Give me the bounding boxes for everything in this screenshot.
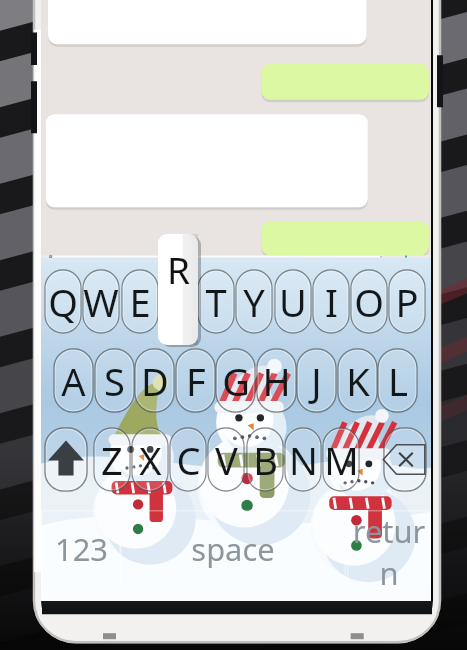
staticText: space [191,528,275,570]
button[interactable]: Z [94,428,130,491]
staticText: return [347,510,431,587]
button[interactable]: C [170,428,206,491]
staticText: E [129,276,151,328]
button[interactable]: 123 [41,510,121,587]
staticText: K [346,355,370,407]
staticText: I [325,276,338,328]
staticText: D [141,355,169,407]
button[interactable]: V [208,428,244,491]
button[interactable]: Shift [45,428,87,491]
staticText: S [104,355,125,407]
button[interactable]: W [83,270,119,333]
button[interactable]: space [120,510,346,587]
staticText: A [61,355,86,407]
button[interactable]: U [275,270,311,333]
staticText: H [262,355,291,407]
button[interactable]: Delete [384,428,426,491]
button[interactable]: O [351,270,387,333]
staticText: F [186,355,206,407]
staticText: Y [243,276,265,328]
button[interactable]: X [132,428,168,491]
button[interactable]: J [297,349,336,412]
staticText: B [253,434,278,486]
button[interactable]: G [216,349,255,412]
staticText: C [176,434,201,486]
staticText: W [83,276,119,328]
button[interactable]: A [54,349,93,412]
button[interactable]: L [378,349,417,412]
button[interactable]: return [347,510,431,587]
staticText: P [395,276,419,328]
staticText: Q [48,276,78,328]
button[interactable]: N [285,428,321,491]
button[interactable]: M [323,428,359,491]
button[interactable]: P [389,270,425,333]
button[interactable]: I [313,270,349,333]
staticText: U [279,276,307,328]
button[interactable]: T [198,270,234,333]
staticText: L [388,355,408,407]
staticText: J [311,355,322,407]
staticText: M [324,434,359,486]
staticText: Z [101,434,123,486]
staticText: N [289,434,318,486]
staticText: X [139,434,162,486]
button[interactable]: F [176,349,215,412]
staticText: T [205,276,227,328]
button[interactable]: Y [236,270,272,333]
button[interactable] [160,270,196,333]
button[interactable]: K [338,349,377,412]
button[interactable]: E [122,270,158,333]
staticText: G [222,355,250,407]
staticText: R [167,245,190,295]
staticText: V [215,434,238,486]
button[interactable]: Q [45,270,81,333]
button[interactable]: S [95,349,134,412]
button[interactable]: D [135,349,174,412]
staticText: 123 [55,528,108,570]
button[interactable]: H [257,349,296,412]
staticText: O [354,276,384,328]
button[interactable]: B [247,428,283,491]
button[interactable]: R [158,234,198,345]
